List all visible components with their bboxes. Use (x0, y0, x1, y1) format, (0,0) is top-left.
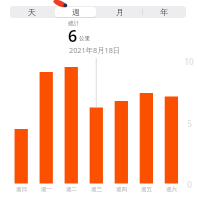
staticText: 總計 (68, 20, 79, 27)
staticText: 10 (184, 56, 194, 67)
staticText: 年 (160, 7, 168, 17)
staticText: 週日 (16, 186, 27, 193)
staticText: 6 (68, 25, 78, 47)
staticText: 週四 (116, 186, 127, 193)
staticText: 週六 (166, 186, 177, 193)
staticText: 2021年8月18日 (69, 45, 121, 55)
staticText: 週五 (141, 186, 152, 193)
staticText: 週三 (91, 186, 102, 193)
button[interactable]: 年 (142, 6, 186, 18)
button[interactable]: 週 (54, 6, 98, 18)
other: Pointer (0, 0, 197, 200)
staticText: 公里 (79, 35, 90, 42)
staticText: 週二 (66, 186, 77, 193)
staticText: 0 (187, 179, 192, 190)
button[interactable] (54, 20, 139, 58)
button[interactable]: 月 (98, 6, 142, 18)
staticText: 5 (187, 118, 192, 129)
staticText: 天 (28, 7, 36, 17)
staticText: 月 (116, 7, 124, 17)
button[interactable]: 天 (10, 6, 54, 18)
staticText: 週 (72, 7, 80, 17)
staticText: 週一 (41, 186, 52, 193)
